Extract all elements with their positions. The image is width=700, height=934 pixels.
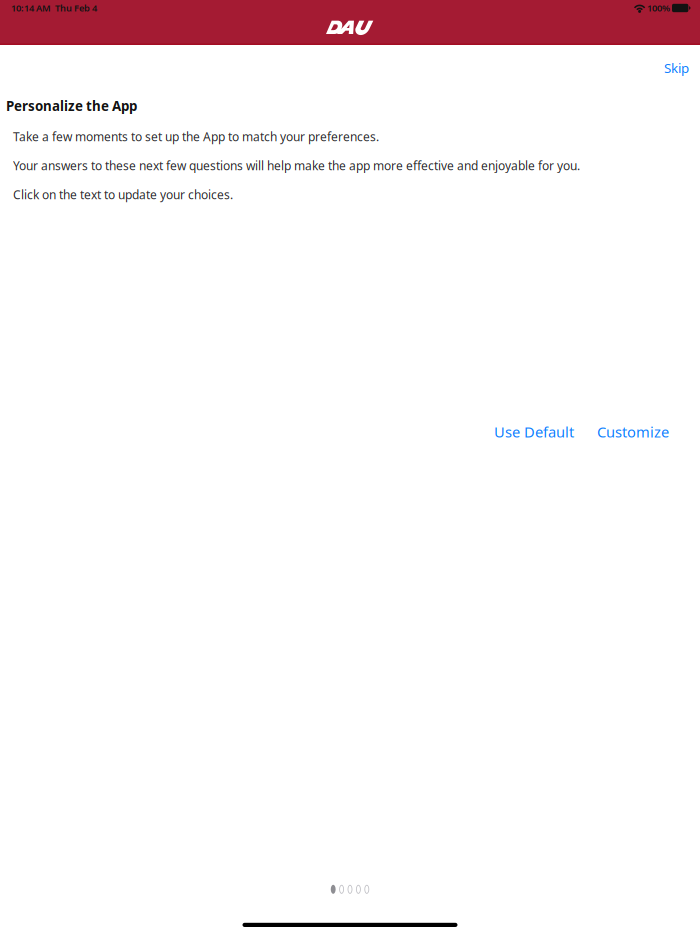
button[interactable]: Customize <box>591 417 675 446</box>
button[interactable]: Page 1 of 5 <box>327 882 373 897</box>
staticText: Customize <box>597 422 669 441</box>
staticText: 10:14 AM <box>11 2 51 14</box>
staticText: 100% <box>645 2 672 14</box>
staticText: Personalize the App <box>6 97 137 115</box>
button[interactable]: Skip <box>657 54 696 82</box>
staticText: Your answers to these next few questions… <box>13 158 580 173</box>
button[interactable]: Use Default <box>488 417 580 446</box>
staticText: Skip <box>664 59 689 77</box>
staticText: Take a few moments to set up the App to … <box>13 129 379 145</box>
staticText: Thu Feb 4 <box>51 2 97 14</box>
staticText: Click on the text to update your choices… <box>13 187 233 202</box>
staticText: Use Default <box>494 422 574 441</box>
